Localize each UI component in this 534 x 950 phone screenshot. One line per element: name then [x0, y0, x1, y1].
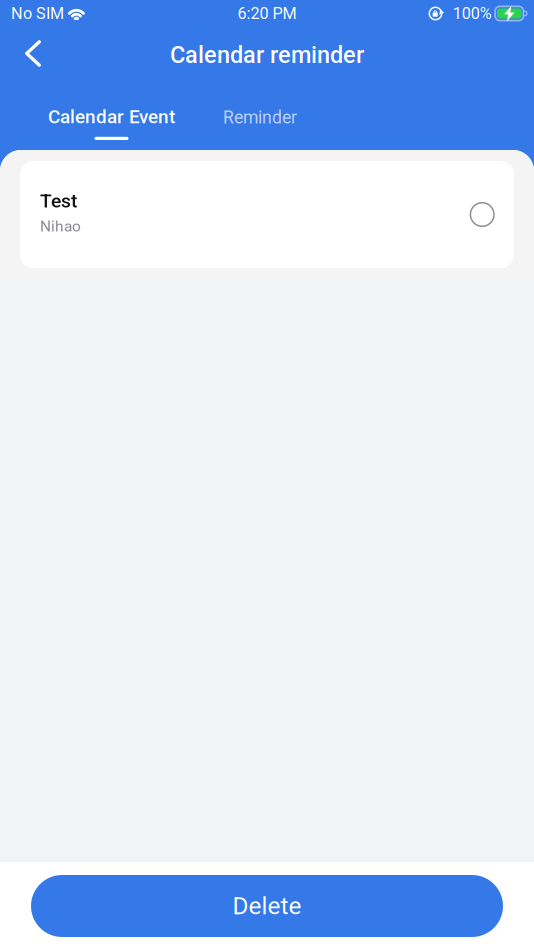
- staticText: No SIM: [11, 4, 64, 23]
- staticText: Delete: [232, 892, 301, 920]
- staticText: Calendar reminder: [170, 41, 364, 69]
- staticText: Nihao: [40, 217, 81, 235]
- button[interactable]: Test: [20, 161, 514, 268]
- button[interactable]: Back: [0, 27, 66, 73]
- staticText: Reminder: [223, 107, 297, 128]
- button[interactable]: Calendar Event: [40, 73, 183, 150]
- staticText: Calendar Event: [48, 106, 175, 128]
- staticText: Test: [40, 190, 77, 212]
- staticText: 100%: [453, 4, 492, 23]
- button[interactable]: Reminder: [215, 73, 305, 150]
- staticText: 6:20 PM: [237, 4, 296, 23]
- button[interactable]: Delete: [31, 875, 503, 937]
